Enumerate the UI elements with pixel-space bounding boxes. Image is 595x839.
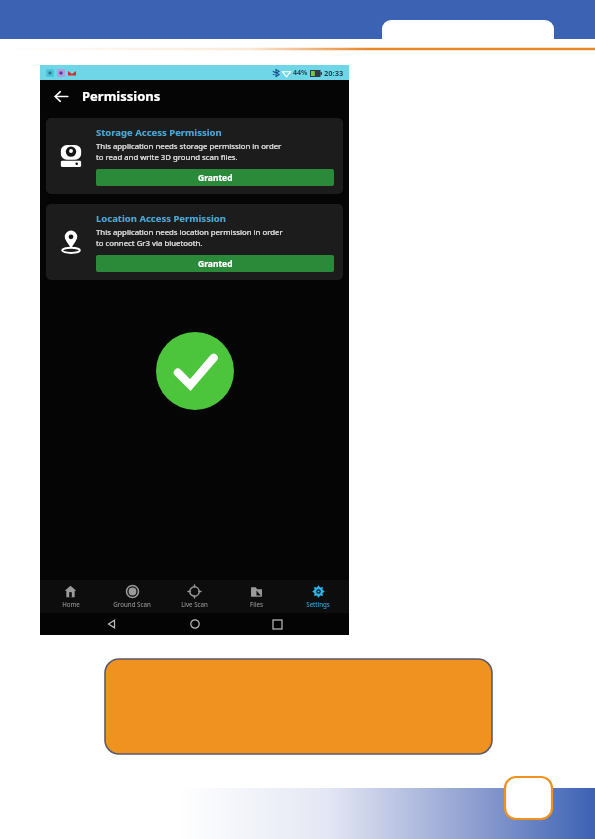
- staticText: Home: [62, 600, 80, 608]
- button[interactable]: Ground Scan: [101, 580, 163, 613]
- button[interactable]: Live Scan: [163, 580, 225, 613]
- staticText: Granted: [198, 258, 233, 270]
- staticText: Files: [250, 600, 263, 608]
- staticText: Live Scan: [181, 600, 208, 608]
- button[interactable]: Back: [101, 613, 123, 635]
- button[interactable]: Home: [40, 580, 101, 613]
- staticText: Permissions: [82, 87, 161, 105]
- staticText: This application needs storage permissio…: [96, 141, 282, 152]
- button[interactable]: Settings: [287, 580, 349, 613]
- button[interactable]: Storage Access Permission: [46, 118, 343, 194]
- staticText: 44%: [293, 68, 308, 78]
- staticText: This application needs location permissi…: [96, 227, 283, 238]
- button[interactable]: Granted: [96, 255, 334, 272]
- staticText: Ground Scan: [113, 600, 151, 608]
- staticText: to connect Gr3 via bluetooth.: [96, 238, 203, 249]
- button[interactable]: Recent apps: [266, 613, 288, 635]
- staticText: 20:33: [324, 68, 344, 78]
- button[interactable]: Back: [48, 83, 74, 109]
- staticText: Granted: [198, 172, 233, 184]
- button[interactable]: Location Access Permission: [46, 204, 343, 280]
- button[interactable]: Files: [225, 580, 287, 613]
- staticText: to read and write 3D ground scan files.: [96, 152, 238, 163]
- staticText: Storage Access Permission: [96, 126, 222, 139]
- button[interactable]: Granted: [96, 169, 334, 186]
- staticText: Location Access Permission: [96, 212, 226, 225]
- button[interactable]: Home: [184, 613, 206, 635]
- staticText: Settings: [306, 600, 330, 608]
